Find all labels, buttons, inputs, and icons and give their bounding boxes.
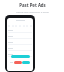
button[interactable] bbox=[7, 36, 33, 42]
button[interactable] bbox=[11, 55, 30, 58]
staticText: Rescue pets looking for a home bbox=[16, 11, 49, 14]
button[interactable] bbox=[7, 48, 33, 54]
button[interactable] bbox=[22, 61, 30, 64]
staticText: Past Pet Ads bbox=[19, 2, 46, 8]
button[interactable] bbox=[7, 54, 33, 60]
button[interactable] bbox=[14, 61, 22, 64]
button[interactable] bbox=[7, 42, 33, 48]
button[interactable] bbox=[7, 30, 33, 36]
